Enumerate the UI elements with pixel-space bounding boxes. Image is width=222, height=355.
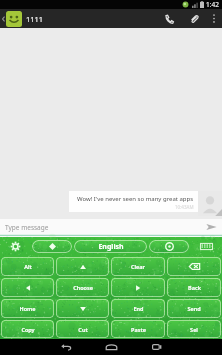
staticText: Home xyxy=(19,305,36,312)
staticText: Back xyxy=(188,284,201,291)
button[interactable]: Back xyxy=(167,278,221,297)
staticText: Wow! I've never seen so many great apps xyxy=(77,195,194,203)
button[interactable]: Sel xyxy=(167,320,221,338)
button[interactable]: Settings xyxy=(0,237,31,256)
staticText: Send xyxy=(187,305,201,312)
button[interactable] xyxy=(167,257,221,276)
staticText: Sel xyxy=(190,326,198,333)
button[interactable]: Emoji xyxy=(32,240,72,253)
button[interactable] xyxy=(1,278,54,297)
button[interactable]: Paste xyxy=(111,320,165,338)
staticText: Clear xyxy=(131,263,145,270)
button[interactable]: Alt xyxy=(1,257,54,276)
button[interactable]: Navigate up xyxy=(0,9,6,28)
staticText: English xyxy=(98,242,124,252)
staticText: 1111 xyxy=(26,14,44,24)
button[interactable]: Recent apps xyxy=(134,339,179,355)
button[interactable]: Copy xyxy=(1,320,54,338)
button[interactable]: End xyxy=(111,299,165,318)
button[interactable]: More options xyxy=(206,9,222,28)
staticText: 1:42 xyxy=(206,0,219,9)
button[interactable] xyxy=(56,257,109,276)
staticText: Copy xyxy=(21,326,35,333)
button[interactable] xyxy=(111,278,165,297)
staticText: 10:43AM xyxy=(175,204,194,210)
button[interactable]: Send xyxy=(201,219,222,235)
staticText: Alt xyxy=(24,263,32,270)
button[interactable]: Hide keyboard xyxy=(190,237,222,256)
staticText: Paste xyxy=(131,326,146,333)
button[interactable]: Home xyxy=(89,339,134,355)
button[interactable]: Home xyxy=(1,299,54,318)
button[interactable] xyxy=(56,299,109,318)
button[interactable]: Send xyxy=(167,299,221,318)
staticText: Choose xyxy=(73,284,93,291)
staticText: End xyxy=(133,305,144,312)
button[interactable]: Choose xyxy=(56,278,109,297)
staticText: Type message xyxy=(5,223,49,232)
staticText: Cut xyxy=(78,326,88,333)
button[interactable]: Clear xyxy=(111,257,165,276)
button[interactable]: Back xyxy=(44,339,89,355)
button[interactable]: English xyxy=(74,240,147,253)
button[interactable]: Voice input xyxy=(149,240,189,253)
button[interactable]: Cut xyxy=(56,320,109,338)
button[interactable]: Attach xyxy=(181,9,206,28)
button[interactable]: Call xyxy=(156,9,181,28)
